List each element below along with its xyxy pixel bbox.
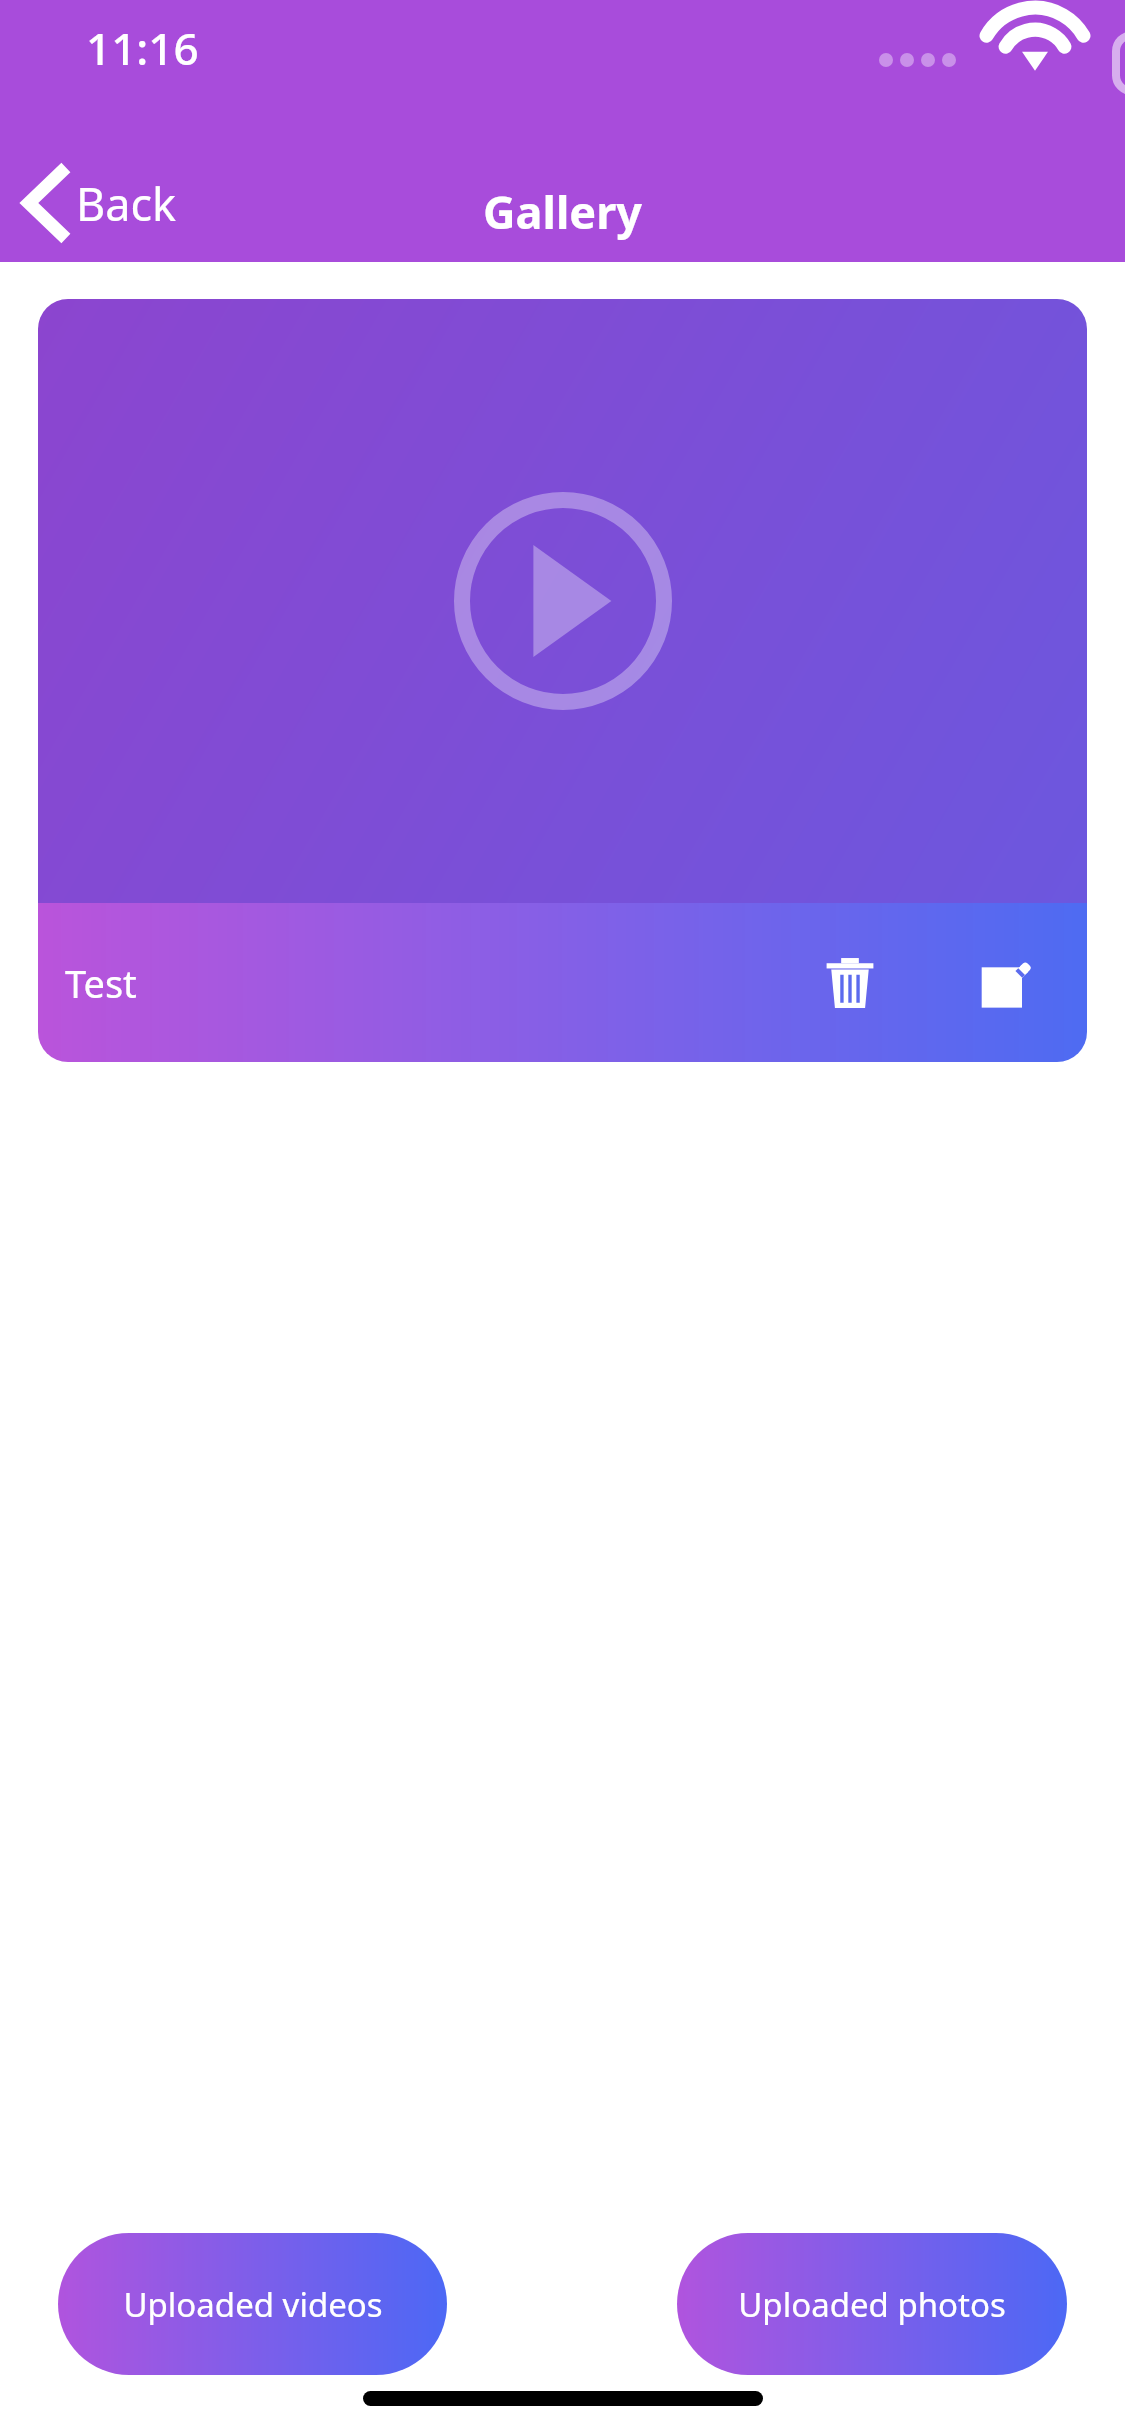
- staticText: Test: [65, 957, 137, 1009]
- staticText: Back: [76, 173, 177, 234]
- button[interactable]: Play video: [38, 299, 1087, 903]
- staticText: Uploaded videos: [123, 2282, 383, 2327]
- button[interactable]: Edit: [949, 924, 1067, 1042]
- button[interactable]: Delete: [791, 924, 909, 1042]
- button[interactable]: Uploaded videos: [58, 2233, 447, 2375]
- staticText: Gallery: [0, 181, 1125, 242]
- staticText: Uploaded photos: [738, 2282, 1006, 2327]
- button[interactable]: Uploaded photos: [677, 2233, 1067, 2375]
- button[interactable]: Back: [14, 150, 195, 256]
- staticText: 11:16: [86, 18, 199, 78]
